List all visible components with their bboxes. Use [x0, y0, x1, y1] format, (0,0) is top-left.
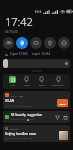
button[interactable]: Block	[54, 114, 60, 120]
staticText: Tap to connect network	[5, 104, 32, 107]
staticText: 04/10/20	[5, 30, 18, 34]
staticText: Security scan	[11, 118, 25, 121]
button[interactable]: Toutiao	[3, 125, 70, 142]
button[interactable]: Scan	[8, 76, 17, 87]
button[interactable]: Brightness	[3, 59, 70, 68]
button[interactable]: Data	[30, 37, 42, 49]
staticText: Read the full content now	[5, 137, 33, 140]
staticText: Scan	[10, 84, 15, 87]
staticText: 17:42	[5, 14, 33, 29]
button[interactable]: Bluetooth	[16, 37, 28, 49]
staticText: Wi-Fi 14m	[11, 94, 24, 97]
button[interactable]: Delete	[62, 114, 68, 120]
staticText: Beijing headline news	[5, 132, 37, 136]
staticText: Clean	[24, 84, 30, 87]
button[interactable]: Mi Security suggestion	[3, 111, 70, 123]
staticText: Super 51466	[10, 52, 28, 56]
staticText: super 61454	[32, 52, 51, 56]
staticText: Toutiao	[10, 127, 19, 130]
button[interactable]: Screenshot	[51, 76, 65, 87]
button[interactable]: Do not disturb	[58, 37, 70, 49]
button[interactable]: Clean	[22, 76, 31, 87]
button[interactable]: Wi-Fi	[3, 37, 14, 49]
staticText: Mi Security suggestion	[11, 113, 43, 117]
staticText: Boost	[39, 84, 45, 87]
button[interactable]: Wi-Fi 14m	[3, 91, 70, 109]
staticText: 99%	[30, 118, 35, 121]
staticText: WLAN	[5, 99, 15, 103]
staticText: Open	[59, 102, 66, 105]
staticText: Screenshot	[52, 84, 64, 87]
button[interactable]: Boost	[37, 76, 46, 87]
button[interactable]: Open	[57, 99, 68, 107]
button[interactable]: Flashlight	[44, 37, 56, 49]
